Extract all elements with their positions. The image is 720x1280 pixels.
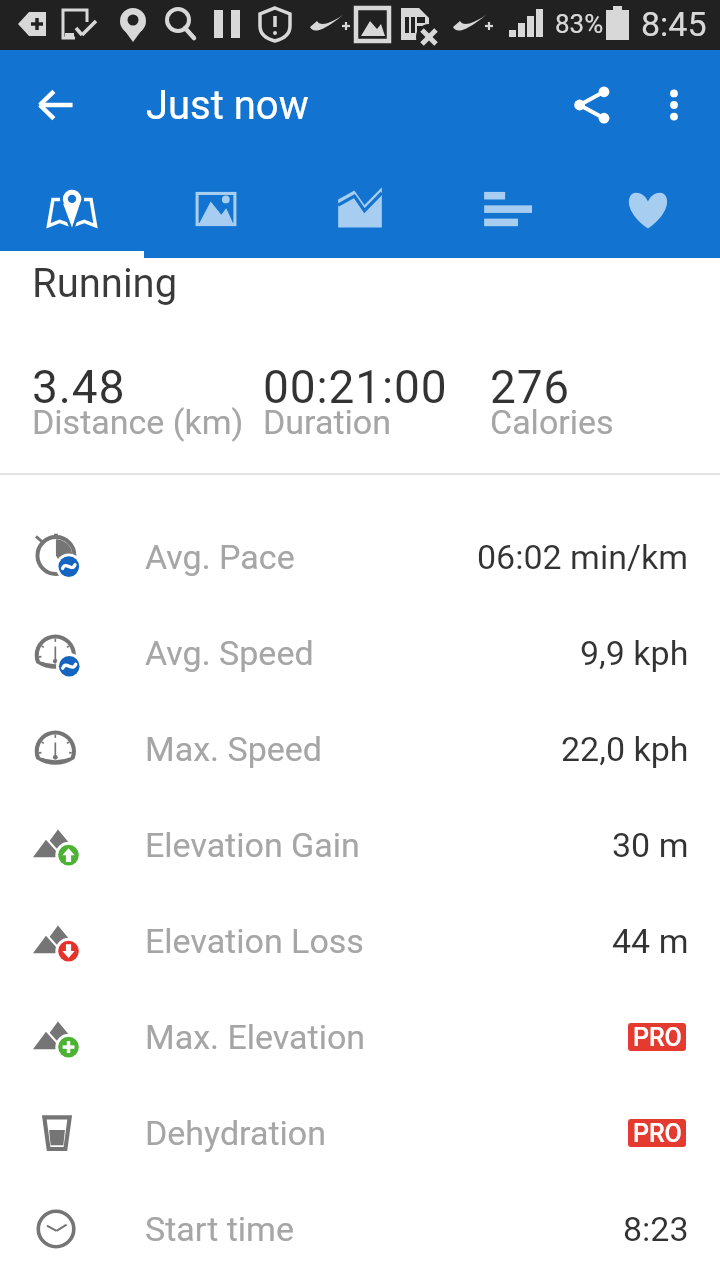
staticText: PRO — [633, 1119, 682, 1147]
staticText: Running — [32, 260, 178, 307]
button[interactable]: Heart rate — [576, 160, 720, 258]
button[interactable]: More options — [640, 71, 708, 139]
staticText: PRO — [633, 1023, 682, 1051]
staticText: Elevation Gain — [145, 825, 360, 865]
button[interactable]: Elevation Gain — [0, 797, 720, 893]
button[interactable]: Start time — [0, 1181, 720, 1277]
staticText: Elevation Loss — [145, 921, 364, 961]
staticText: Avg. Speed — [145, 633, 314, 673]
staticText: Just now — [146, 82, 309, 129]
button[interactable]: Splits — [432, 160, 576, 258]
staticText: 8:23 — [623, 1209, 689, 1249]
button[interactable]: Map — [0, 160, 144, 258]
staticText: 44 m — [612, 921, 689, 961]
staticText: 8:45 — [641, 4, 707, 44]
staticText: 30 m — [612, 825, 689, 865]
button[interactable]: Avg. Pace — [0, 509, 720, 605]
button[interactable]: Max. Speed — [0, 701, 720, 797]
staticText: 22,0 kph — [561, 729, 689, 769]
button[interactable]: Chart — [288, 160, 432, 258]
staticText: 3.48 — [32, 360, 126, 414]
staticText: 9,9 kph — [580, 633, 689, 673]
button[interactable]: Photos — [144, 160, 288, 258]
staticText: 06:02 min/km — [477, 537, 689, 577]
staticText: Avg. Pace — [145, 537, 295, 577]
staticText: Start time — [145, 1209, 294, 1249]
staticText: 276 — [490, 360, 571, 414]
button[interactable]: Navigate up — [22, 71, 90, 139]
staticText: 00:21:00 — [263, 360, 448, 414]
button[interactable]: Max. Elevation — [0, 989, 720, 1085]
staticText: Max. Speed — [145, 729, 322, 769]
button[interactable]: Avg. Speed — [0, 605, 720, 701]
staticText: Max. Elevation — [145, 1017, 366, 1057]
staticText: Dehydration — [145, 1113, 327, 1153]
staticText: Calories — [490, 402, 614, 442]
staticText: Distance (km) — [32, 402, 244, 442]
staticText: Duration — [263, 402, 391, 442]
button[interactable]: Share — [558, 71, 626, 139]
button[interactable]: Elevation Loss — [0, 893, 720, 989]
button[interactable]: Dehydration — [0, 1085, 720, 1181]
staticText: 83% — [555, 9, 604, 39]
